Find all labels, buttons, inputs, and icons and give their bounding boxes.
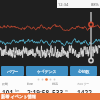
staticText: ケイデンス xyxy=(37,69,57,74)
staticText: カロリー xyxy=(77,82,90,86)
staticText: 標高 xyxy=(52,82,58,86)
staticText: 88% xyxy=(91,2,99,7)
button[interactable]: 心拍数 xyxy=(70,66,97,76)
staticText: 12:34 xyxy=(58,2,69,7)
staticText: m xyxy=(65,89,68,93)
staticText: 距離 xyxy=(2,82,8,86)
staticText: 533 xyxy=(52,88,64,93)
staticText: km xyxy=(15,89,20,93)
staticText: 時間 xyxy=(27,82,33,86)
button[interactable]: ケイデンス xyxy=(26,66,68,76)
staticText: 2:19:58 xyxy=(27,88,50,93)
button[interactable]: 新着 イベント情報 xyxy=(0,93,100,100)
staticText: パワー xyxy=(7,69,19,74)
button[interactable]: パワー xyxy=(1,66,24,76)
staticText: 心拍数 xyxy=(78,69,90,74)
staticText: 新着 イベント情報 xyxy=(1,94,36,100)
staticText: 1422 xyxy=(77,88,92,93)
staticText: 101 xyxy=(2,88,14,93)
